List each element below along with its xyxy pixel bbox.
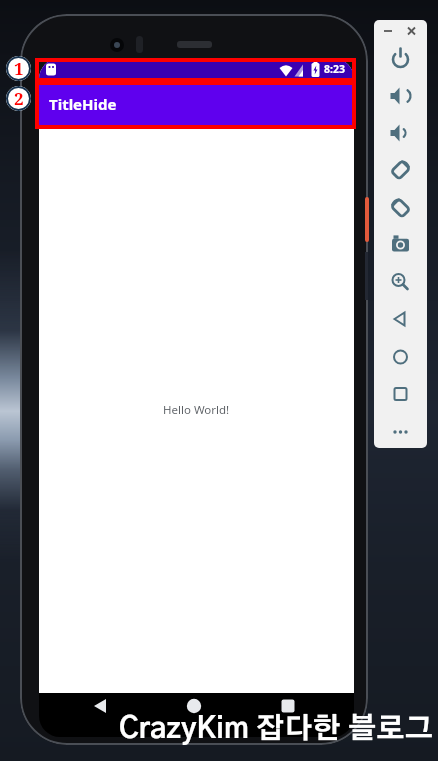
button[interactable] bbox=[378, 376, 421, 408]
button[interactable] bbox=[378, 189, 421, 221]
button[interactable] bbox=[378, 301, 421, 333]
button[interactable] bbox=[378, 338, 421, 370]
button[interactable] bbox=[378, 413, 421, 445]
staticText: Hello World! bbox=[163, 402, 230, 418]
button[interactable] bbox=[252, 693, 312, 737]
button[interactable] bbox=[164, 693, 224, 737]
button[interactable] bbox=[378, 40, 421, 72]
button[interactable] bbox=[378, 152, 421, 184]
button[interactable] bbox=[378, 115, 421, 147]
staticText: CrazyKim 잡다한 블로그 bbox=[119, 715, 434, 744]
staticText: 1 bbox=[14, 57, 24, 80]
button[interactable] bbox=[378, 77, 421, 109]
button[interactable] bbox=[79, 693, 139, 737]
staticText: 2 bbox=[14, 87, 24, 110]
staticText: 8:23 bbox=[324, 62, 345, 76]
button[interactable] bbox=[39, 81, 354, 128]
staticText: TitleHide bbox=[49, 94, 117, 114]
button[interactable] bbox=[378, 264, 421, 296]
button[interactable] bbox=[378, 227, 421, 259]
